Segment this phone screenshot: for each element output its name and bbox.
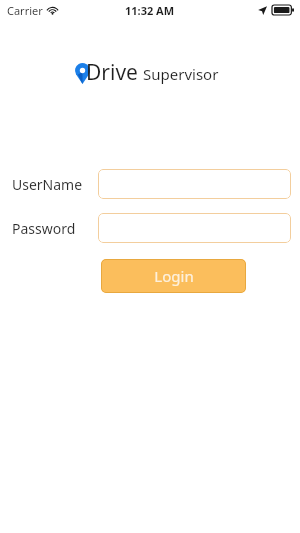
staticText: 11:32 AM	[125, 3, 175, 18]
button[interactable]: Login	[101, 259, 246, 293]
button[interactable]: Password	[98, 213, 291, 243]
other: Wi-Fi	[47, 5, 58, 16]
staticText: Supervisor	[143, 64, 219, 84]
staticText: Drive	[86, 58, 138, 87]
staticText: UserName	[12, 175, 83, 194]
staticText: Carrier	[7, 3, 43, 18]
staticText: Login	[154, 266, 194, 286]
other: Location	[258, 6, 267, 15]
staticText: Password	[12, 219, 76, 238]
other: Battery	[272, 5, 294, 15]
button[interactable]: UserName	[98, 169, 291, 199]
